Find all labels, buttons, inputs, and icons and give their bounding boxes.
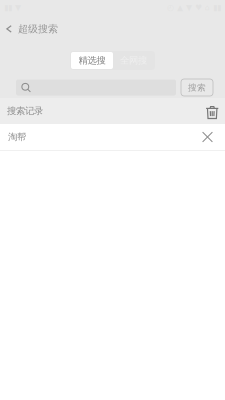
button[interactable]: 搜索 bbox=[181, 79, 213, 96]
button[interactable]: 淘帮 bbox=[0, 124, 225, 150]
button[interactable]: 精选搜 bbox=[71, 52, 113, 69]
staticText: 精选搜 bbox=[78, 55, 105, 66]
staticText: 超级搜索 bbox=[18, 23, 58, 35]
button[interactable]: 超级搜索 bbox=[0, 15, 225, 43]
staticText: 搜索记录 bbox=[7, 105, 43, 117]
staticText: 淘帮 bbox=[8, 131, 26, 143]
button[interactable]: Clear search history bbox=[204, 102, 219, 119]
staticText: 搜索 bbox=[188, 82, 206, 93]
